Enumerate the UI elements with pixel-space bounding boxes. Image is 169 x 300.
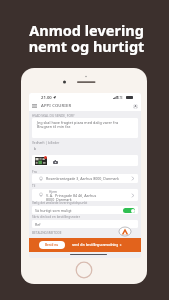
button[interactable]: Photo [32, 155, 138, 166]
other: App logo [119, 227, 131, 236]
staticText: Til [32, 184, 36, 188]
staticText: send din bestillingsanmodning » [72, 243, 122, 247]
staticText: Rosenkrantzgade 3, Aarhus 8000, Danmark [46, 176, 119, 181]
staticText: Bestil nu [45, 243, 59, 247]
staticText: Skriv din kod en bestillingsnoter [32, 215, 80, 219]
staticText: LTE [118, 96, 123, 100]
staticText: Hjem [49, 190, 57, 194]
staticText: Ref [35, 222, 41, 227]
button[interactable]: Jeg skal have fragtet pizza med dalig va… [32, 118, 138, 138]
staticText: Vælg det ønskede leveringstidspunkt [32, 201, 88, 205]
staticText: HVAD SKAL DU SENDE, FOR? [32, 114, 75, 118]
staticText: Vedhæft | billeder [32, 141, 60, 145]
staticText: Jeg skal have fragtet pizza med dalig va… [37, 120, 119, 129]
button[interactable]: Hurtigst muligt [123, 208, 135, 213]
other: Open [132, 194, 134, 197]
button[interactable]: Rosenkrantzgade 3, Aarhus 8000, Danmark [32, 174, 138, 183]
other: Open [132, 177, 134, 180]
staticText: Så hurtigt som muligt [35, 208, 72, 213]
staticText: BETALINGSMETODE [32, 231, 62, 235]
staticText: V. A. Prinsgade 84 4tl, Aarhus 8000, Dan… [46, 193, 97, 201]
button[interactable]: Remove photo [44, 156, 47, 159]
staticText: APPI COURIER [41, 103, 72, 109]
other: Menu [32, 104, 37, 108]
button[interactable]: Photo [35, 157, 47, 165]
staticText: Anmod levering nemt og hurtigt [2, 20, 169, 56]
button[interactable]: Menu [29, 101, 141, 111]
button[interactable]: Profile [133, 104, 138, 109]
button[interactable]: Ref [32, 220, 138, 228]
button[interactable]: Bestil nu [29, 238, 141, 252]
button[interactable]: Hjem [32, 189, 138, 201]
other: Take photo [53, 160, 58, 164]
staticText: 21.00 [41, 95, 52, 101]
staticText: Fra [32, 170, 37, 174]
button[interactable]: Så hurtigt som muligt [32, 206, 138, 214]
staticText: b [34, 147, 36, 151]
